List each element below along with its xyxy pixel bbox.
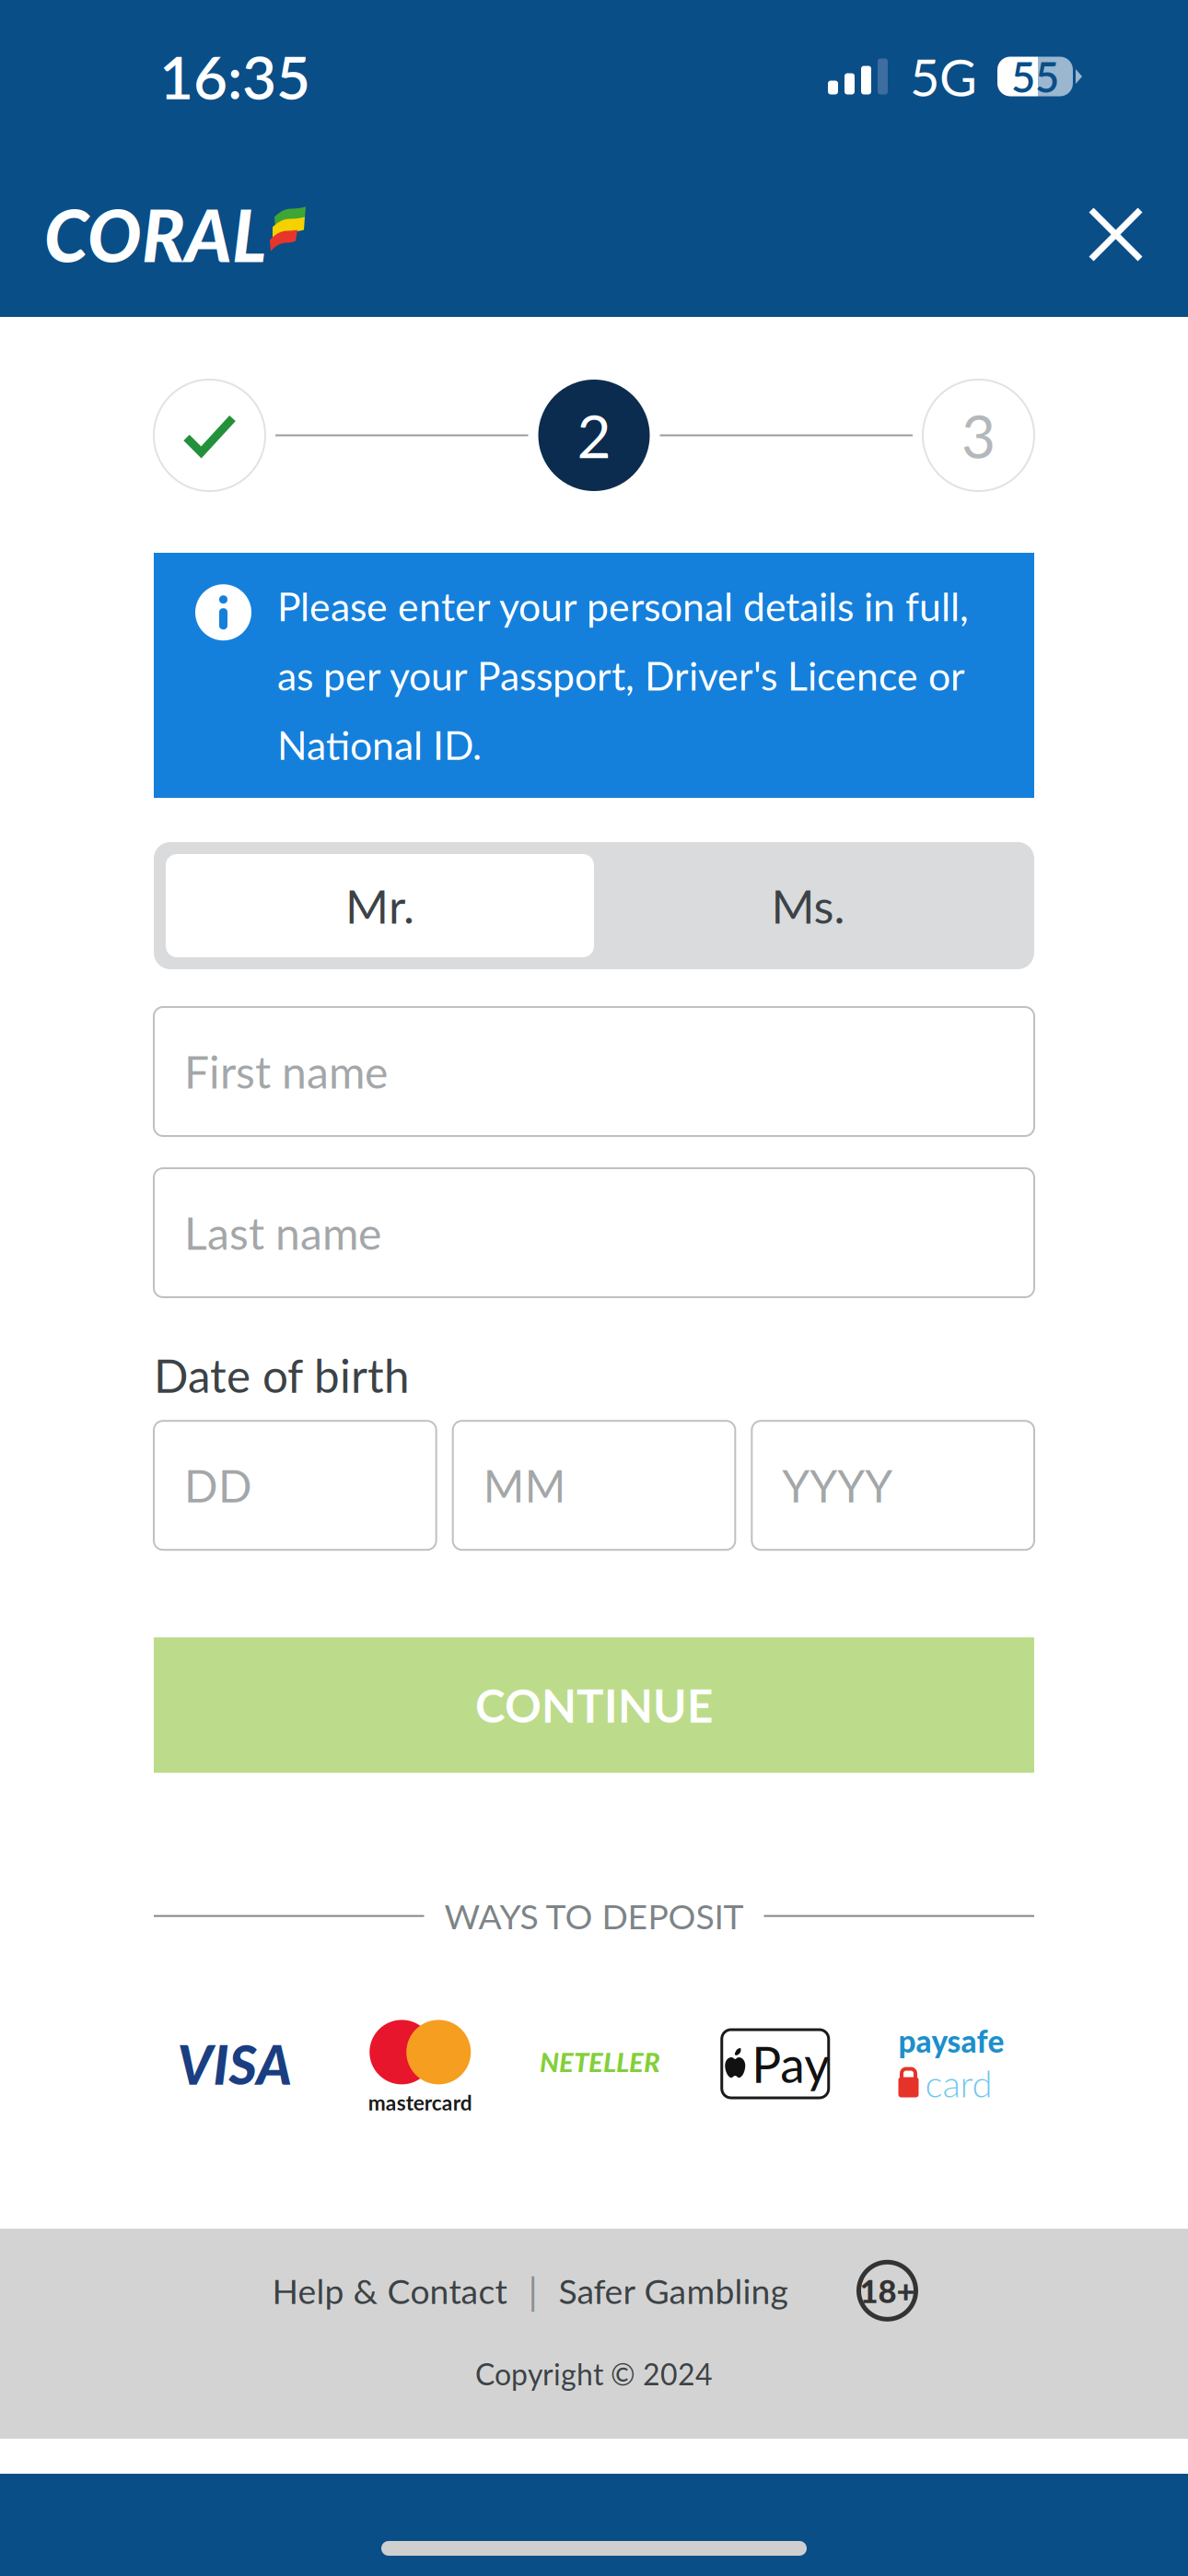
staticText: Last name xyxy=(184,1206,381,1259)
staticText: Help & Contact xyxy=(272,2270,507,2311)
button[interactable]: Close xyxy=(1064,182,1168,287)
staticText: 55 xyxy=(1011,51,1059,102)
staticText: National ID. xyxy=(277,721,482,768)
staticText: 18+ xyxy=(860,2272,915,2310)
staticText: paysafe xyxy=(898,2022,1004,2059)
staticText: 16:35 xyxy=(159,41,310,112)
staticText: 5G xyxy=(910,46,977,107)
staticText: CONTINUE xyxy=(475,1678,713,1732)
staticText: card xyxy=(925,2061,992,2105)
staticText: Safer Gambling xyxy=(559,2270,788,2311)
staticText: mastercard xyxy=(368,2090,472,2115)
staticText: MM xyxy=(483,1459,566,1512)
staticText: First name xyxy=(184,1045,388,1098)
staticText: Mr. xyxy=(345,878,414,934)
staticText: NETELLER xyxy=(540,2046,660,2078)
staticText: Ms. xyxy=(771,878,845,934)
staticText: DD xyxy=(184,1459,252,1512)
staticText: | xyxy=(528,2268,537,2314)
staticText: WAYS TO DEPOSIT xyxy=(444,1895,744,1937)
button[interactable]: CONTINUE xyxy=(154,1637,1034,1773)
button[interactable]: Help & Contact xyxy=(272,2270,507,2311)
button[interactable]: Safer Gambling xyxy=(559,2270,788,2311)
staticText: Copyright © 2024 xyxy=(475,2356,713,2391)
staticText: Date of birth xyxy=(154,1348,410,1402)
staticText: CORAL xyxy=(44,192,267,277)
staticText: YYYY xyxy=(782,1459,893,1512)
staticText: Please enter your personal details in fu… xyxy=(277,582,969,630)
staticText: VISA xyxy=(177,2031,292,2096)
button[interactable]: Mr. xyxy=(166,854,594,957)
staticText: as per your Passport, Driver's Licence o… xyxy=(277,652,965,699)
staticText: 2 xyxy=(577,400,611,471)
button[interactable]: Ms. xyxy=(594,854,1022,957)
staticText: 3 xyxy=(961,400,996,471)
staticText: Pay xyxy=(752,2034,829,2093)
